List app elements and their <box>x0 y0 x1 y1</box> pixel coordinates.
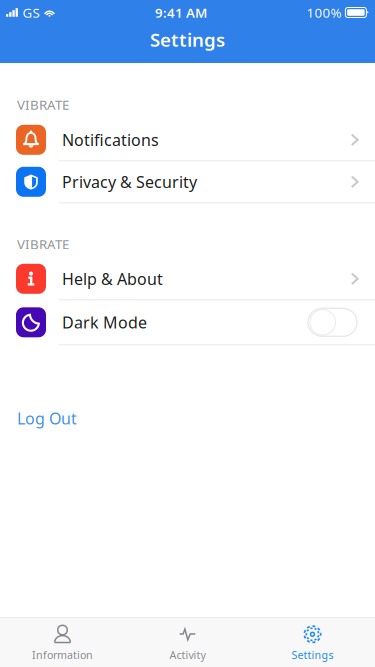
staticText: Help & About <box>62 268 163 289</box>
button[interactable]: Notifications <box>0 119 375 161</box>
staticText: Privacy & Security <box>62 171 197 192</box>
staticText: VIBRATE <box>17 235 69 253</box>
button[interactable]: Privacy & Security <box>0 161 375 203</box>
button[interactable]: Log Out <box>0 408 375 428</box>
staticText: 100% <box>306 4 341 21</box>
button[interactable]: Activity <box>125 616 250 667</box>
button[interactable]: Information <box>0 616 125 667</box>
staticText: VIBRATE <box>17 96 69 113</box>
button[interactable]: Dark Mode <box>0 300 375 345</box>
staticText: Settings <box>291 648 333 662</box>
staticText: 9:41 AM <box>155 4 207 21</box>
staticText: Activity <box>169 648 205 662</box>
staticText: Dark Mode <box>62 312 147 333</box>
staticText: Settings <box>150 27 225 52</box>
staticText: Log Out <box>17 408 77 429</box>
button[interactable]: Help & About <box>0 258 375 300</box>
button[interactable]: Settings <box>250 616 375 667</box>
staticText: Information <box>32 648 93 662</box>
staticText: Notifications <box>62 129 159 150</box>
staticText: GS <box>22 4 39 21</box>
